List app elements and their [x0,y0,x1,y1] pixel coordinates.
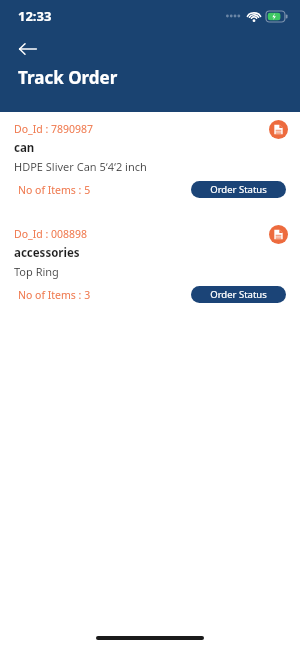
staticText: No of Items : 3 [18,288,91,302]
button[interactable]: View document [269,120,288,139]
staticText: HDPE Sliver Can 5‘4‘2 inch [14,159,147,174]
staticText: 12:33 [18,7,52,25]
staticText: Track Order [18,66,118,89]
staticText: can [14,140,35,156]
button[interactable]: Back [12,33,44,65]
staticText: accessories [14,245,80,261]
button[interactable]: Order Status [191,286,286,303]
staticText: Order Status [210,183,267,196]
button[interactable]: Order Status [191,181,286,198]
button[interactable]: Do_Id : 7890987 [5,114,295,211]
button[interactable]: Do_Id : 008898 [5,219,295,316]
staticText: Order Status [210,288,267,301]
staticText: Do_Id : 008898 [14,227,88,241]
staticText: Top Ring [14,264,59,279]
staticText: Do_Id : 7890987 [14,122,94,136]
button[interactable]: View document [269,225,288,244]
staticText: No of Items : 5 [18,183,91,197]
